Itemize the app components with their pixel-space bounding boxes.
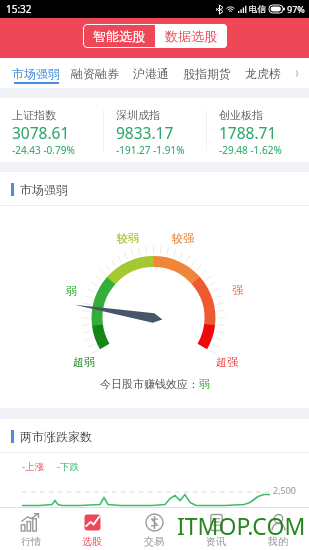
button[interactable]: 股指期货 (183, 58, 231, 88)
staticText: 3078.61 (12, 122, 70, 143)
staticText: 融资融券 (71, 66, 119, 81)
staticText: 超弱 (73, 355, 95, 369)
button[interactable]: 上证指数 (0, 98, 103, 162)
button[interactable]: 数据选股 (155, 24, 227, 48)
staticText: 强 (232, 283, 243, 297)
staticText: 弱 (66, 284, 77, 298)
staticText: 智能选股 (93, 28, 145, 44)
staticText: 超强 (216, 355, 238, 369)
staticText: 市场强弱 (12, 66, 60, 81)
other: More tabs (295, 68, 299, 79)
button[interactable]: 交易 (123, 507, 185, 550)
staticText: 行情 (21, 535, 41, 548)
staticText: 1788.71 (219, 122, 277, 143)
staticText: 15:32 (6, 2, 32, 16)
staticText: ITMOP.COM (177, 510, 306, 541)
staticText: 市场强弱 (20, 182, 68, 197)
staticText: 电信 (249, 4, 266, 15)
button[interactable]: 选股 (61, 507, 123, 550)
staticText: 今日股市赚钱效应： (100, 377, 199, 391)
staticText: 较弱 (117, 231, 139, 245)
staticText: -29.48 -1.62% (219, 143, 282, 157)
staticText: 数据选股 (165, 28, 217, 44)
staticText: 97% (287, 3, 305, 15)
button[interactable]: 智能选股 (83, 24, 155, 48)
staticText: 较强 (172, 231, 194, 245)
button[interactable]: 沪港通 (133, 58, 169, 88)
staticText: 龙虎榜 (245, 66, 281, 81)
button[interactable]: 行情 (0, 507, 61, 550)
staticText: 股指期货 (183, 66, 231, 81)
staticText: -下跌 (57, 460, 80, 473)
staticText: 上证指数 (12, 108, 56, 122)
staticText: 深圳成指 (116, 108, 160, 122)
button[interactable]: 资讯 (185, 507, 247, 550)
staticText: -上涨 (22, 460, 45, 473)
staticText: 选股 (82, 535, 102, 548)
staticText: -24.43 -0.79% (12, 143, 75, 157)
staticText: 2,500 (273, 484, 297, 496)
staticText: 沪港通 (133, 66, 169, 81)
button[interactable]: 我的 (247, 507, 309, 550)
staticText: 资讯 (206, 535, 226, 548)
button[interactable]: 创业板指 (207, 98, 309, 162)
button[interactable]: 龙虎榜 (245, 58, 281, 88)
staticText: 我的 (268, 535, 288, 548)
button[interactable]: 融资融券 (71, 58, 119, 88)
staticText: -191.27 -1.91% (116, 143, 185, 157)
button[interactable]: 市场强弱 (12, 58, 60, 88)
button[interactable]: 深圳成指 (104, 98, 206, 162)
staticText: 创业板指 (219, 108, 263, 122)
staticText: 两市涨跌家数 (20, 429, 92, 444)
staticText: 弱 (199, 377, 210, 391)
staticText: 交易 (144, 535, 164, 548)
staticText: 9833.17 (116, 122, 174, 143)
